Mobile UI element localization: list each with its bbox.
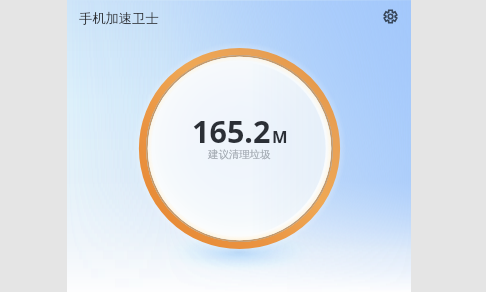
staticText: 建议清理垃圾 — [208, 148, 271, 161]
staticText: 165.2 — [192, 110, 271, 152]
staticText: M — [272, 125, 288, 147]
button[interactable]: Settings — [377, 3, 403, 29]
button[interactable] — [127, 36, 352, 261]
button[interactable]: 手机加速卫士 — [76, 7, 162, 30]
staticText: 手机加速卫士 — [79, 10, 159, 27]
